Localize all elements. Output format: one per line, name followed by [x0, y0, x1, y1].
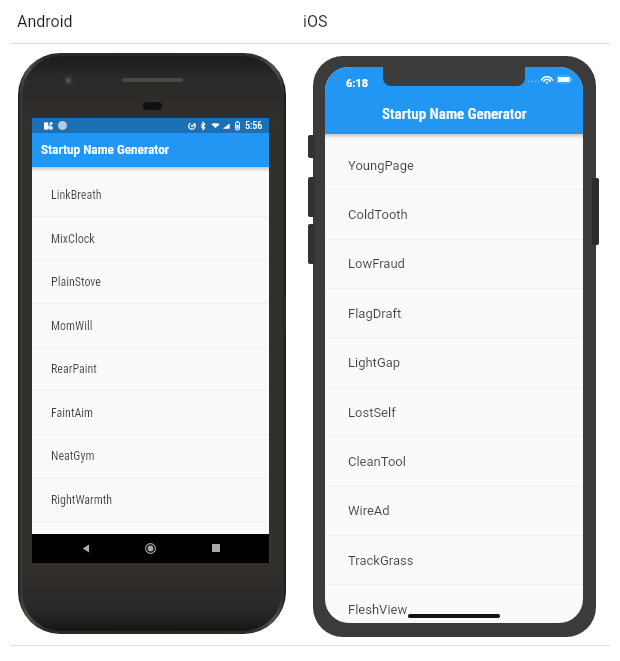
- staticText: LightGap: [348, 355, 401, 370]
- button[interactable]: NeatGym: [32, 434, 269, 478]
- button[interactable]: MomWill: [32, 304, 269, 348]
- staticText: Android: [17, 12, 73, 31]
- button[interactable]: LowFraud: [325, 239, 583, 288]
- staticText: RearPaint: [51, 362, 97, 376]
- staticText: 6:18: [346, 77, 369, 90]
- staticText: MixClock: [51, 232, 95, 246]
- staticText: FlagDraft: [348, 306, 402, 321]
- button[interactable]: LightGap: [325, 338, 583, 387]
- staticText: YoungPage: [348, 158, 414, 173]
- button[interactable]: Recents: [203, 535, 229, 561]
- button[interactable]: LostSelf: [325, 388, 583, 437]
- staticText: iOS: [303, 12, 328, 31]
- staticText: ColdTooth: [348, 207, 408, 222]
- button[interactable]: FlagDraft: [325, 289, 583, 338]
- button[interactable]: YoungPage: [325, 141, 583, 190]
- staticText: Startup Name Generator: [382, 105, 527, 123]
- staticText: NeatGym: [51, 449, 95, 463]
- staticText: LowFraud: [348, 256, 405, 271]
- button[interactable]: ColdTooth: [325, 190, 583, 239]
- staticText: FleshView: [348, 602, 408, 617]
- button[interactable]: TrackGrass: [325, 536, 583, 585]
- staticText: LostSelf: [348, 405, 396, 420]
- staticText: WireAd: [348, 503, 390, 518]
- button[interactable]: MixClock: [32, 217, 269, 261]
- button[interactable]: RightWarmth: [32, 478, 269, 522]
- button[interactable]: FaintAim: [32, 391, 269, 435]
- button[interactable]: RearPaint: [32, 347, 269, 391]
- button[interactable]: Home: [137, 535, 163, 561]
- button[interactable]: FleshView: [325, 585, 583, 623]
- staticText: CleanTool: [348, 454, 406, 469]
- staticText: TrackGrass: [348, 553, 414, 568]
- button[interactable]: Back: [73, 535, 99, 561]
- staticText: Startup Name Generator: [41, 142, 170, 158]
- button[interactable]: Startup Name Generator: [32, 133, 269, 167]
- button[interactable]: LinkBreath: [32, 173, 269, 217]
- staticText: LinkBreath: [51, 188, 102, 202]
- staticText: RightWarmth: [51, 493, 113, 507]
- button[interactable]: CleanTool: [325, 437, 583, 486]
- staticText: FaintAim: [51, 406, 94, 420]
- button[interactable]: WireAd: [325, 486, 583, 535]
- staticText: 5:56: [245, 120, 263, 132]
- button[interactable]: PlainStove: [32, 260, 269, 304]
- staticText: MomWill: [51, 319, 93, 333]
- staticText: PlainStove: [51, 275, 101, 289]
